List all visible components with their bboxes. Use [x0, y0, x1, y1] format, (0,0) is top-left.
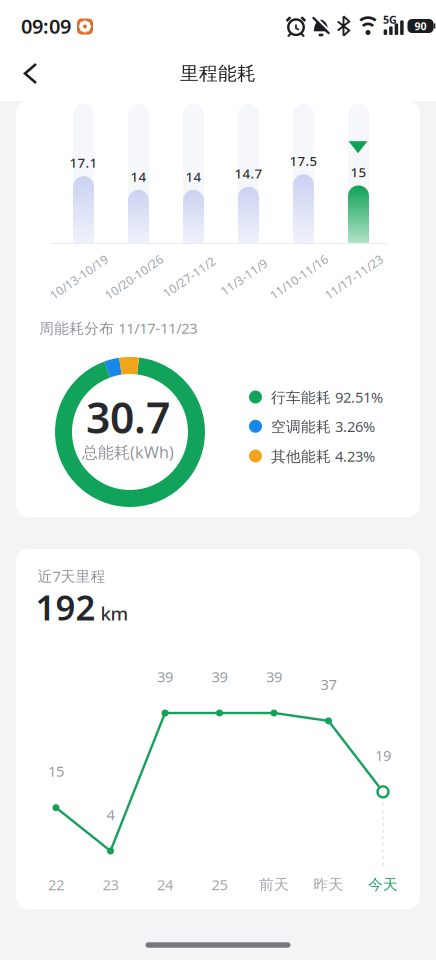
button[interactable]: Back	[13, 52, 48, 95]
staticText: 空调能耗 3.26%	[271, 417, 375, 436]
staticText: 近7天里程	[37, 566, 105, 586]
staticText: 前天	[259, 875, 289, 893]
staticText: 10/27-11/2	[158, 269, 219, 285]
staticText: 15	[48, 761, 64, 781]
staticText: 09:09	[21, 13, 71, 39]
staticText: 14.7	[234, 164, 262, 182]
staticText: 17.1	[69, 154, 97, 171]
staticText: 5G	[383, 12, 397, 27]
staticText: 14	[185, 168, 201, 185]
staticText: 11/17-11/23	[320, 269, 388, 285]
staticText: 14	[130, 168, 146, 185]
staticText: km	[100, 601, 128, 626]
staticText: 39	[211, 667, 227, 686]
staticText: 30.7	[86, 389, 170, 445]
staticText: 37	[320, 675, 336, 694]
staticText: 25	[211, 875, 227, 894]
staticText: 24	[157, 875, 173, 894]
staticText: 39	[157, 667, 173, 686]
staticText: 90	[414, 19, 426, 33]
staticText: 22	[48, 875, 64, 894]
staticText: 192	[35, 584, 95, 630]
staticText: 今天	[368, 875, 398, 893]
staticText: 39	[266, 667, 282, 686]
staticText: 行车能耗 92.51%	[271, 387, 383, 407]
staticText: 19	[375, 746, 391, 765]
staticText: 4	[106, 805, 114, 824]
staticText: 23	[102, 875, 118, 894]
staticText: 10/20-10/26	[100, 269, 168, 285]
staticText: 11/10-11/16	[265, 269, 333, 285]
staticText: 昨天	[313, 875, 343, 893]
staticText: 周能耗分布 11/17-11/23	[39, 318, 197, 338]
staticText: 10/13-10/19	[45, 269, 113, 285]
staticText: 15	[350, 163, 366, 181]
staticText: 其他能耗 4.23%	[271, 446, 375, 466]
staticText: 里程能耗	[180, 62, 256, 85]
staticText: 11/3-11/9	[217, 269, 271, 285]
staticText: 17.5	[289, 152, 317, 170]
staticText: 总能耗(kWh)	[82, 441, 174, 463]
